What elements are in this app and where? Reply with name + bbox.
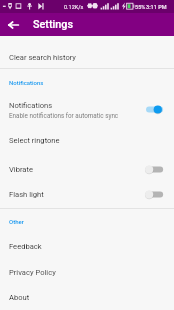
staticText: Settings — [33, 18, 73, 31]
staticText: Feedback — [9, 242, 42, 251]
button[interactable]: Back — [0, 13, 26, 36]
staticText: Enable notifications for automatic sync — [9, 112, 119, 119]
button[interactable]: Feedback — [0, 232, 174, 260]
staticText: Flash light — [9, 190, 146, 199]
button[interactable]: Flash light — [0, 183, 174, 206]
staticText: 0.12K/s — [64, 4, 84, 10]
button[interactable]: Clear search history — [0, 45, 174, 69]
button[interactable]: Select ringtone — [0, 125, 174, 155]
button[interactable]: Privacy Policy — [0, 260, 174, 284]
button[interactable]: About — [0, 284, 174, 310]
button[interactable]: Vibrate — [0, 155, 174, 183]
staticText: Notifications — [9, 79, 44, 86]
staticText: About — [9, 293, 30, 302]
staticText: Clear search history — [9, 53, 76, 62]
staticText: Select ringtone — [9, 136, 60, 145]
staticText: 3:11 PM — [146, 4, 167, 10]
staticText: Notifications — [9, 101, 53, 110]
staticText: Privacy Policy — [9, 268, 56, 277]
button[interactable]: Notifications — [0, 94, 174, 125]
staticText: Other — [9, 218, 24, 225]
staticText: 55% — [135, 4, 146, 10]
staticText: Vibrate — [9, 165, 146, 174]
